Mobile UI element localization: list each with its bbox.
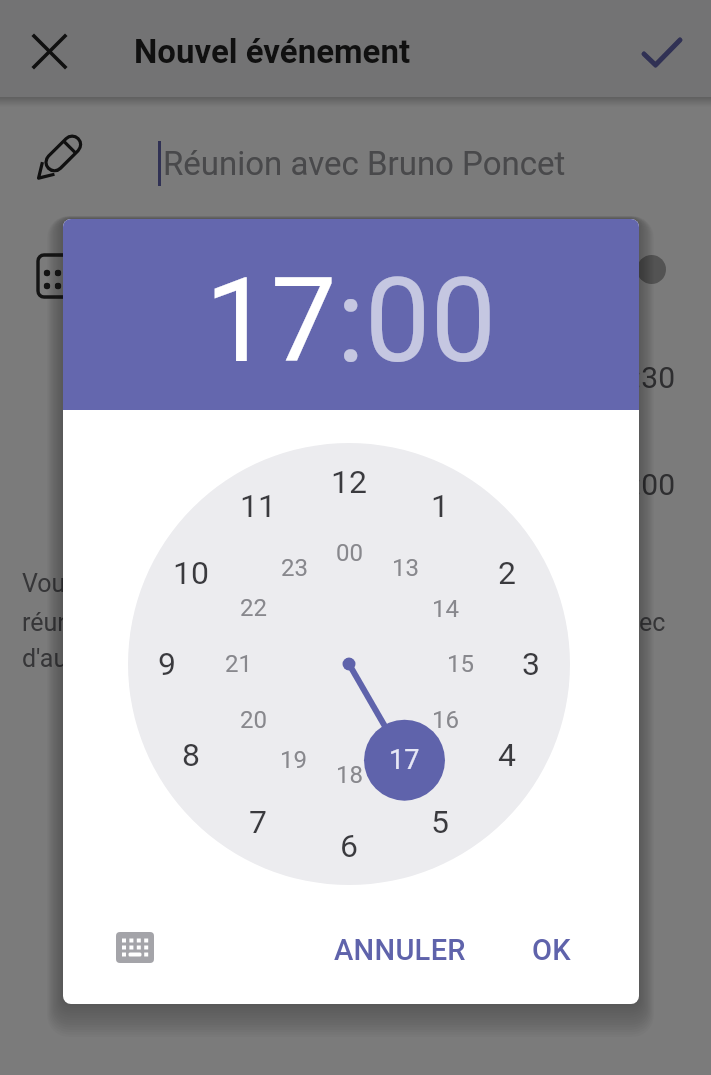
button[interactable] [636, 28, 688, 80]
button[interactable] [110, 925, 160, 969]
staticText: 17 [389, 744, 420, 776]
button[interactable]: Réunion avec Bruno Poncet [163, 128, 683, 198]
staticText: 4 [498, 736, 516, 774]
staticText: 3 [522, 645, 540, 683]
staticText: ANNULER [334, 933, 466, 967]
staticText: Réunion avec Bruno Poncet [163, 144, 566, 183]
staticText: 21 [225, 650, 252, 678]
staticText: 5 [431, 803, 449, 841]
staticText: 6 [340, 827, 358, 865]
staticText: 00 [336, 539, 363, 567]
staticText: :00 [634, 467, 675, 502]
staticText: 16 [432, 706, 459, 734]
staticText: 11 [240, 487, 276, 525]
staticText: 13 [392, 554, 419, 582]
button[interactable]: ANNULER [290, 915, 510, 985]
staticText: 20 [240, 706, 267, 734]
staticText: Nouvel événement [134, 32, 411, 71]
button[interactable]: OK [441, 915, 639, 985]
staticText: :30 [634, 360, 675, 395]
staticText: 14 [432, 595, 459, 623]
staticText: ec [639, 608, 666, 637]
staticText: 1 [431, 487, 449, 525]
staticText: 22 [240, 594, 267, 622]
staticText: 17:00 [205, 252, 497, 389]
staticText: 15 [447, 650, 474, 678]
staticText: OK [532, 933, 571, 967]
staticText: 18 [336, 761, 363, 789]
staticText: 9 [158, 645, 176, 683]
staticText: 19 [280, 746, 307, 774]
staticText: 2 [498, 554, 516, 592]
staticText: réunion maintenant ou plus tard avec [22, 608, 434, 637]
staticText: 10 [173, 554, 209, 592]
staticText: d'autres personnes [22, 644, 233, 673]
staticText: Vous pouvez organiser une réunion en [22, 569, 445, 598]
button[interactable] [637, 255, 666, 284]
button[interactable] [26, 28, 73, 75]
staticText: 8 [182, 736, 200, 774]
staticText: 7 [249, 803, 267, 841]
staticText: 12 [331, 463, 367, 501]
staticText: 23 [281, 554, 308, 582]
